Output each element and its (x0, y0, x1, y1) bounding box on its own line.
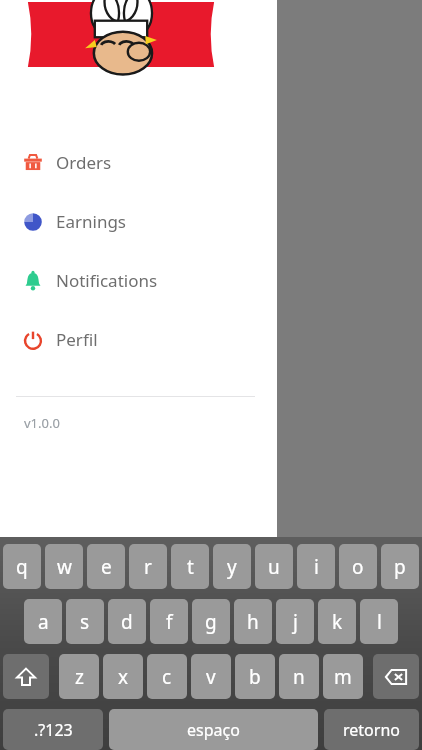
staticText: v1.0.0 (24, 414, 60, 432)
button[interactable]: s (66, 599, 104, 644)
staticText: d (121, 609, 133, 635)
staticText: w (57, 554, 72, 580)
button[interactable]: j (276, 599, 314, 644)
staticText: r (144, 554, 152, 580)
button[interactable]: l (360, 599, 398, 644)
button[interactable]: b (235, 654, 275, 699)
button[interactable]: q (3, 544, 41, 589)
staticText: f (166, 609, 173, 635)
button[interactable]: e (87, 544, 125, 589)
staticText: p (394, 554, 406, 580)
button[interactable]: r (129, 544, 167, 589)
staticText: u (268, 554, 280, 580)
button[interactable]: z (59, 654, 99, 699)
button[interactable]: f (150, 599, 188, 644)
button[interactable]: p (381, 544, 419, 589)
staticText: x (118, 664, 129, 690)
button[interactable]: i (297, 544, 335, 589)
staticText: Notifications (56, 269, 158, 292)
staticText: espaço (187, 719, 240, 741)
staticText: h (247, 609, 259, 635)
staticText: m (334, 664, 352, 690)
staticText: c (162, 664, 172, 690)
staticText: z (75, 664, 84, 690)
button[interactable]: a (24, 599, 62, 644)
staticText: a (38, 609, 49, 635)
button[interactable]: o (339, 544, 377, 589)
button[interactable]: c (147, 654, 187, 699)
staticText: i (314, 554, 319, 580)
button[interactable]: Perfil (0, 310, 277, 369)
staticText: k (332, 609, 343, 635)
button[interactable]: Orders (0, 133, 277, 192)
button[interactable]: x (103, 654, 143, 699)
staticText: y (227, 554, 237, 580)
button[interactable]: n (279, 654, 319, 699)
staticText: Earnings (56, 210, 127, 233)
staticText: b (249, 664, 261, 690)
staticText: retorno (343, 719, 400, 741)
staticText: q (16, 554, 28, 580)
staticText: s (80, 609, 90, 635)
button[interactable]: retorno (324, 709, 419, 750)
staticText: Orders (56, 151, 112, 174)
staticText: j (293, 609, 298, 635)
staticText: e (101, 554, 112, 580)
staticText: o (352, 554, 364, 580)
button[interactable]: espaço (109, 709, 318, 750)
staticText: v (206, 664, 216, 690)
button[interactable]: k (318, 599, 356, 644)
button[interactable]: m (323, 654, 363, 699)
button[interactable]: t (171, 544, 209, 589)
button[interactable]: Shift (3, 654, 49, 699)
button[interactable]: Notifications (0, 251, 277, 310)
staticText: .?123 (34, 719, 73, 741)
button[interactable]: Earnings (0, 192, 277, 251)
button[interactable]: .?123 (3, 709, 103, 750)
staticText: g (205, 609, 217, 635)
button[interactable]: h (234, 599, 272, 644)
button[interactable]: g (192, 599, 230, 644)
button[interactable]: w (45, 544, 83, 589)
staticText: l (377, 609, 382, 635)
button[interactable]: y (213, 544, 251, 589)
staticText: t (187, 554, 194, 580)
button[interactable]: v (191, 654, 231, 699)
button[interactable]: d (108, 599, 146, 644)
staticText: Perfil (56, 328, 98, 351)
staticText: n (293, 664, 305, 690)
button[interactable]: u (255, 544, 293, 589)
button[interactable]: Backspace (373, 654, 419, 699)
